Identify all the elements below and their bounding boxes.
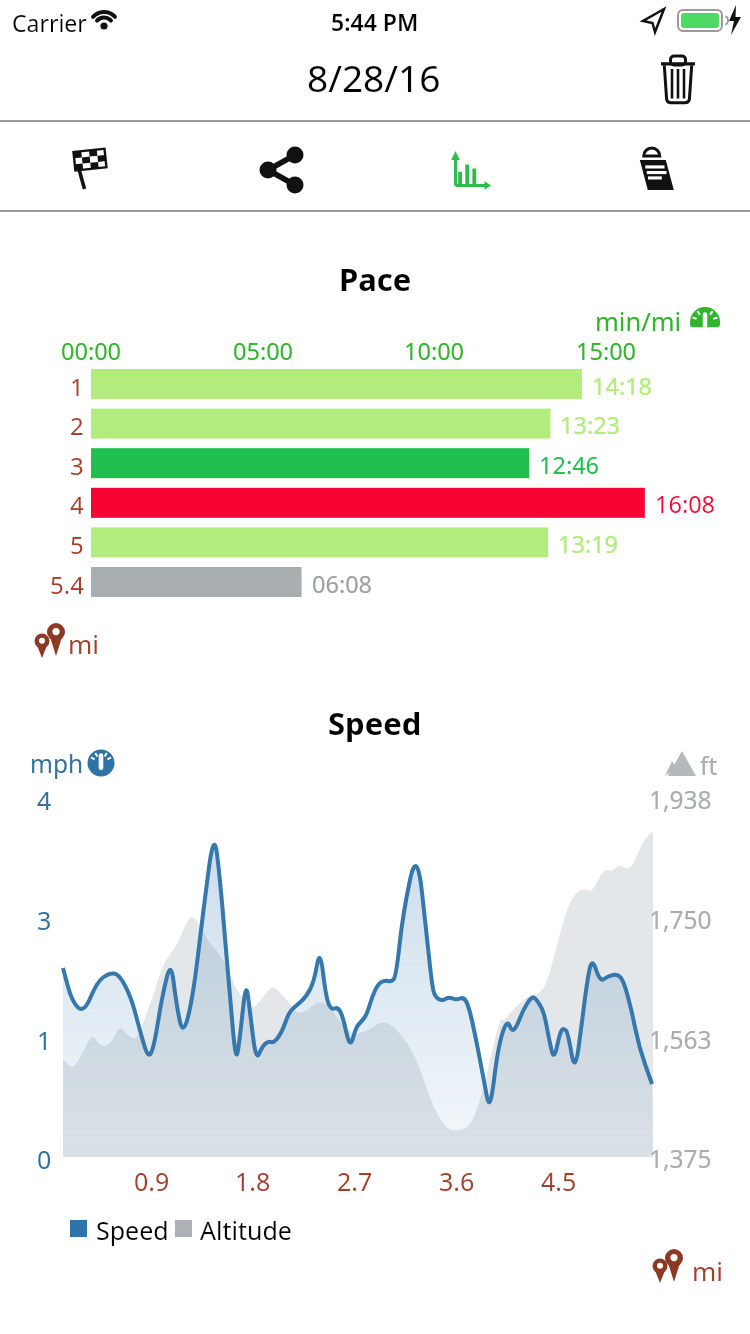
staticText: 1 bbox=[70, 370, 84, 403]
staticText: 1,375 bbox=[649, 1142, 712, 1175]
staticText: 1,750 bbox=[649, 903, 712, 936]
staticText: 4 bbox=[70, 488, 84, 521]
staticText: Speed bbox=[96, 1213, 169, 1247]
staticText: 12:46 bbox=[539, 449, 600, 481]
staticText: 1,938 bbox=[649, 783, 712, 816]
staticText: 3.6 bbox=[439, 1164, 475, 1198]
staticText: 8/28/16 bbox=[307, 52, 441, 102]
staticText: 2 bbox=[70, 409, 84, 442]
button[interactable] bbox=[563, 122, 750, 210]
button[interactable] bbox=[0, 122, 188, 210]
button[interactable] bbox=[375, 122, 563, 210]
staticText: 3 bbox=[70, 449, 84, 482]
staticText: 1,563 bbox=[649, 1023, 712, 1056]
staticText: ft bbox=[700, 749, 718, 782]
staticText: 5.4 bbox=[50, 568, 84, 601]
staticText: 4 bbox=[37, 783, 52, 817]
staticText: Speed bbox=[328, 702, 422, 744]
staticText: Altitude bbox=[200, 1213, 292, 1247]
staticText: 13:19 bbox=[558, 528, 619, 560]
staticText: 3 bbox=[37, 903, 52, 937]
button[interactable] bbox=[650, 50, 706, 106]
staticText: 05:00 bbox=[233, 335, 294, 367]
button[interactable] bbox=[188, 122, 376, 210]
staticText: 4.5 bbox=[541, 1164, 577, 1198]
staticText: 0.9 bbox=[134, 1164, 170, 1198]
staticText: min/mi bbox=[595, 304, 682, 339]
staticText: 0 bbox=[37, 1142, 52, 1176]
staticText: 00:00 bbox=[61, 335, 122, 367]
staticText: 5 bbox=[70, 528, 84, 561]
staticText: 13:23 bbox=[560, 409, 621, 441]
staticText: Carrier bbox=[12, 7, 87, 38]
staticText: mi bbox=[68, 626, 100, 661]
staticText: 14:18 bbox=[592, 370, 653, 402]
staticText: 1.8 bbox=[235, 1164, 271, 1198]
staticText: Pace bbox=[339, 258, 412, 300]
staticText: 10:00 bbox=[404, 335, 465, 367]
staticText: 15:00 bbox=[576, 335, 637, 367]
staticText: 1 bbox=[37, 1023, 52, 1057]
staticText: 5:44 PM bbox=[331, 6, 419, 37]
staticText: 16:08 bbox=[655, 488, 716, 520]
staticText: 2.7 bbox=[337, 1164, 373, 1198]
staticText: mph bbox=[30, 747, 84, 780]
staticText: 06:08 bbox=[312, 568, 373, 600]
staticText: mi bbox=[692, 1253, 724, 1288]
